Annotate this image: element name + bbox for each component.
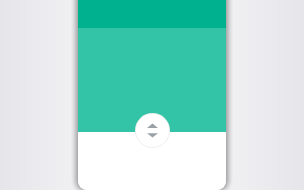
- button[interactable]: Expand: [135, 113, 170, 148]
